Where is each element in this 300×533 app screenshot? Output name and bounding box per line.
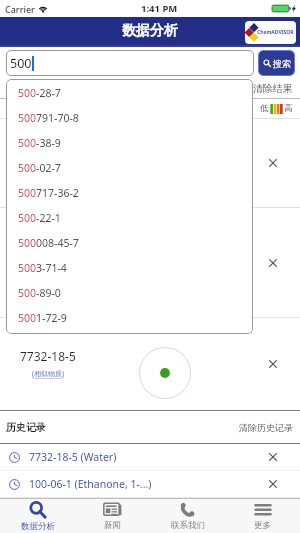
button[interactable]: 搜索 (259, 51, 294, 75)
button[interactable]: 联系我们 (150, 499, 225, 533)
staticText: 500-02-7 (18, 161, 61, 175)
staticText: 500-28-7 (18, 86, 61, 100)
staticText: 7732-18-5 (20, 348, 76, 364)
button[interactable]: Delete history item (245, 444, 300, 470)
button[interactable]: 500 (6, 50, 254, 76)
button[interactable]: 100-06-1 (Ethanone, 1-...) (0, 471, 300, 497)
button[interactable]: 7732-18-5 (Water) (0, 444, 300, 470)
button[interactable]: 500791-70-8 (6, 105, 253, 130)
staticText: 低 (260, 103, 269, 114)
button[interactable]: Remove result (245, 318, 300, 410)
staticText: ChemADVISOR (257, 29, 294, 36)
button[interactable]: 500-22-1 (6, 205, 253, 230)
button[interactable]: 更多 (225, 499, 300, 533)
button[interactable]: Remove result (0, 208, 300, 317)
staticText: 100-06-1 (Ethanone, 1-...) (29, 477, 152, 491)
button[interactable]: 500-02-7 (6, 155, 253, 180)
staticText: 500008-45-7 (18, 236, 79, 250)
button[interactable]: 5001-72-9 (6, 305, 253, 330)
staticText: 500-38-9 (18, 136, 61, 150)
button[interactable]: ChemADVISOR logo (245, 21, 296, 44)
button[interactable]: 清除历史记录 (239, 422, 293, 433)
staticText: 5001-72-9 (18, 311, 67, 325)
staticText: (相似物质) (32, 369, 65, 379)
button[interactable]: 7732-18-5 (0, 318, 300, 410)
staticText: 500791-70-8 (18, 111, 79, 125)
staticText: 历史记录 (6, 421, 46, 434)
staticText: 500-89-0 (18, 286, 61, 300)
button[interactable]: 500-28-7 (6, 80, 253, 105)
staticText: 500 (10, 55, 32, 72)
button[interactable]: 清除结果 (253, 83, 293, 95)
button[interactable]: 500717-36-2 (6, 180, 253, 205)
staticText: Carrier (5, 3, 35, 15)
staticText: 500717-36-2 (18, 186, 79, 200)
staticText: 数据分析 (21, 521, 55, 532)
staticText: 数据分析 (122, 22, 178, 40)
staticText: 5003-71-4 (18, 261, 67, 275)
button[interactable]: Remove result (0, 119, 300, 207)
button[interactable]: 数据分析 (0, 499, 75, 533)
button[interactable]: 新闻 (75, 499, 150, 533)
staticText: 更多 (254, 520, 271, 531)
button[interactable]: Remove result (245, 208, 300, 317)
button[interactable]: Delete history item (245, 471, 300, 497)
button[interactable]: 500008-45-7 (6, 230, 253, 255)
staticText: 新闻 (104, 520, 121, 531)
button[interactable]: 500-89-0 (6, 280, 253, 305)
button[interactable]: 5003-71-4 (6, 255, 253, 280)
staticText: 联系我们 (171, 520, 205, 531)
button[interactable]: 500-38-9 (6, 130, 253, 155)
staticText: 高 (284, 103, 293, 114)
staticText: 1:41 PM (141, 2, 178, 15)
staticText: 7732-18-5 (Water) (29, 450, 117, 464)
button[interactable]: Remove result (245, 119, 300, 207)
staticText: 500-22-1 (18, 211, 61, 225)
staticText: 搜索 (273, 58, 291, 69)
